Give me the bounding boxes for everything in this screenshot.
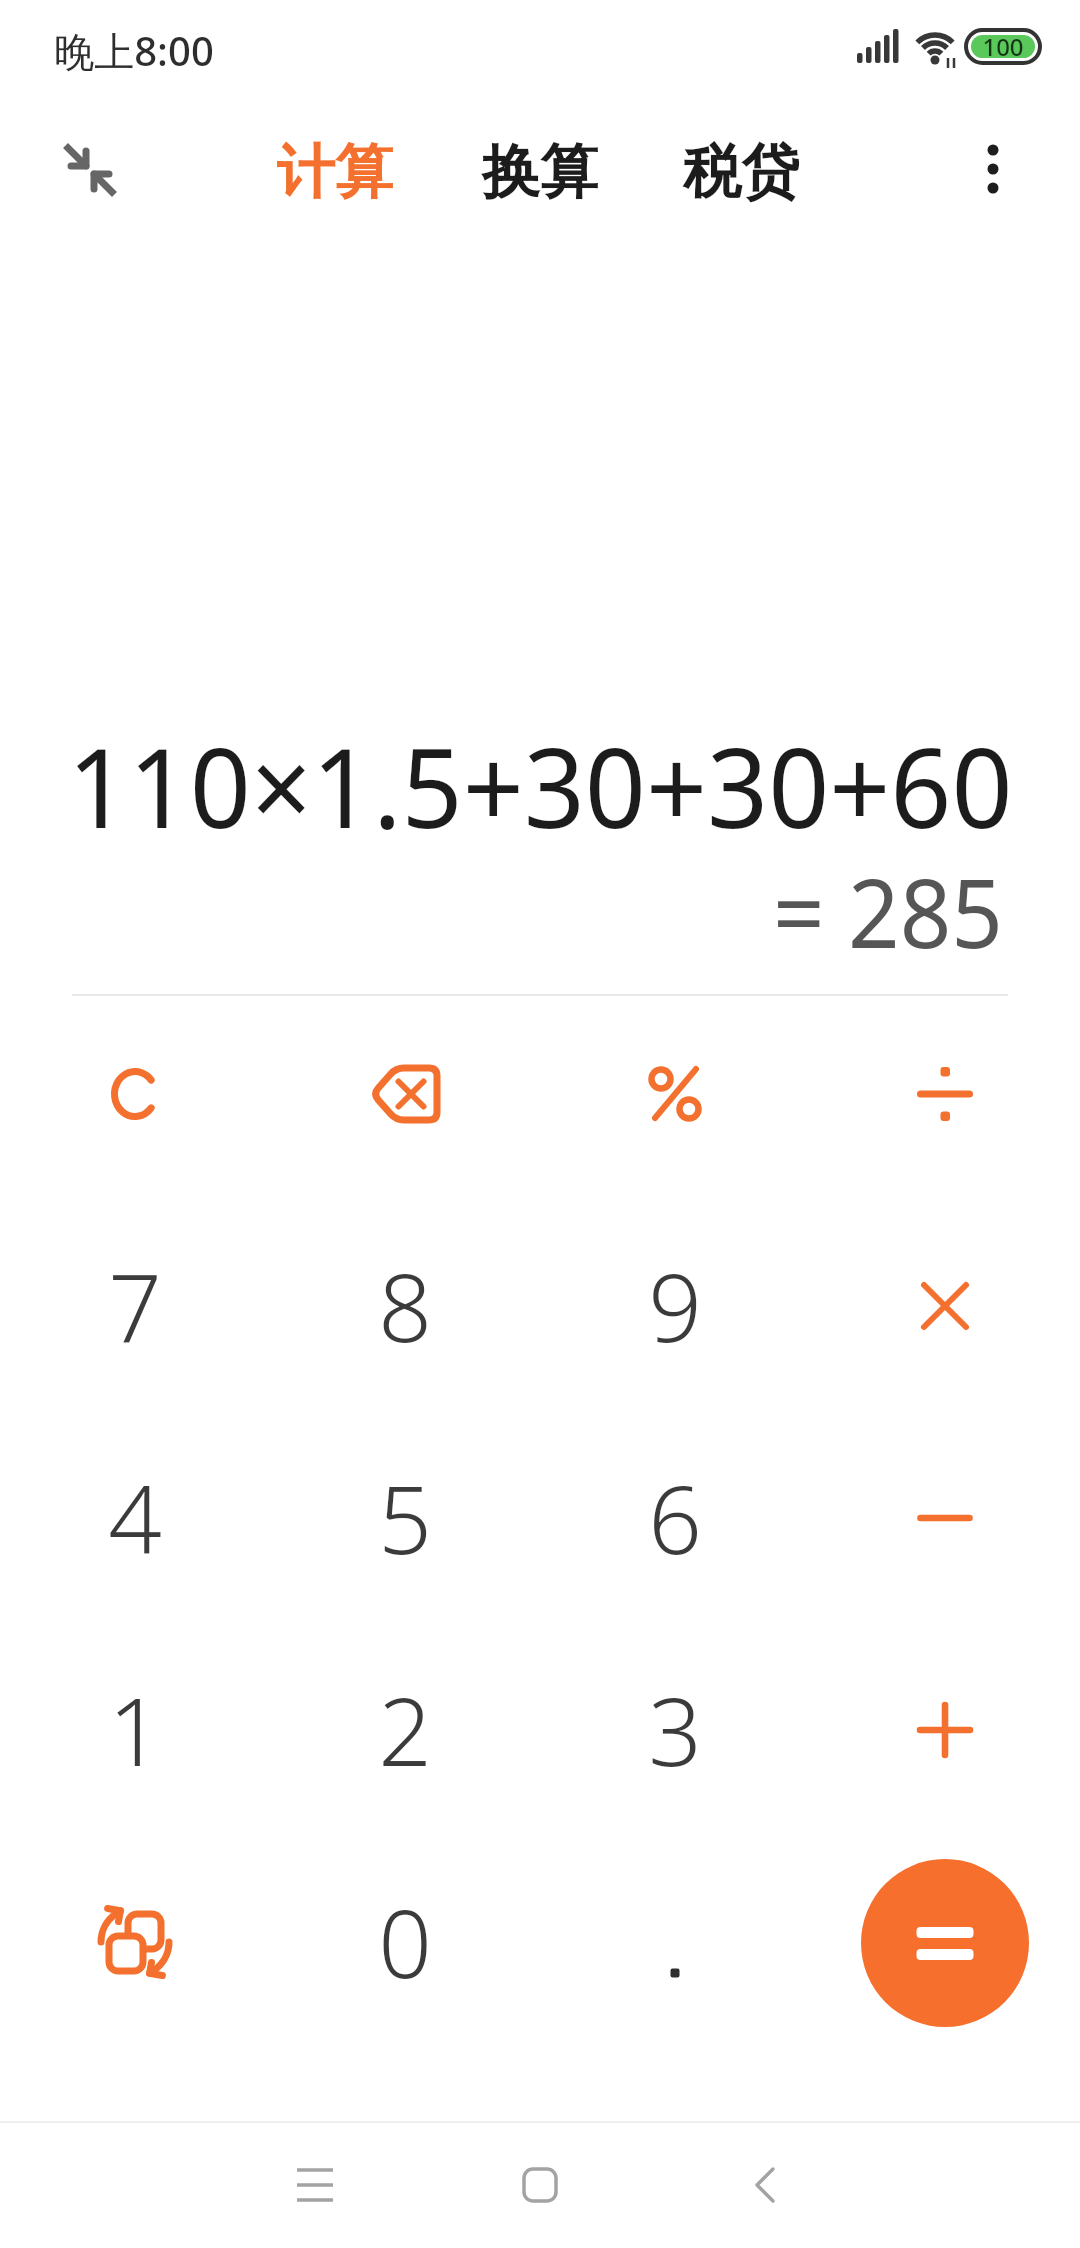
button[interactable] [290,999,520,1189]
button[interactable]: 0 [290,1847,520,2037]
button[interactable]: 4 [20,1423,250,1613]
button[interactable]: 9 [560,1211,790,1401]
button[interactable]: 2 [290,1635,520,1825]
staticText: 换算 [482,136,598,209]
staticText: 5 [378,1454,432,1582]
button[interactable] [20,1847,250,2037]
button[interactable] [560,999,790,1189]
button[interactable]: 5 [290,1423,520,1613]
button[interactable] [950,130,1036,214]
staticText: 7 [108,1242,162,1370]
staticText: 计算 [277,136,393,209]
button[interactable] [830,999,1060,1189]
button[interactable]: 6 [560,1423,790,1613]
staticText: 4 [108,1454,162,1582]
staticText: 晚上8:00 [54,23,214,75]
staticText: = 285 [603,846,1080,975]
button[interactable] [490,2135,590,2235]
button[interactable] [50,130,130,214]
button[interactable] [20,999,250,1189]
button[interactable]: 8 [290,1211,520,1401]
staticText: 0 [378,1878,432,2006]
staticText: 110×1.5+30+30+60 [0,711,1080,859]
staticText: 9 [648,1242,702,1370]
button[interactable] [861,1859,1029,2027]
button[interactable]: 换算 [440,130,640,214]
button[interactable] [560,1847,790,2037]
button[interactable] [830,1423,1060,1613]
button[interactable] [830,1211,1060,1401]
button[interactable] [715,2135,815,2235]
staticText: 6 [648,1454,702,1582]
button[interactable]: 计算 [235,130,435,214]
staticText: 8 [378,1242,432,1370]
button[interactable]: 7 [20,1211,250,1401]
staticText: 2 [378,1666,432,1794]
button[interactable]: 3 [560,1635,790,1825]
staticText: 100 [982,30,1024,63]
button[interactable] [265,2135,365,2235]
button[interactable] [830,1635,1060,1825]
staticText: 税贷 [683,136,799,209]
staticText: 3 [648,1666,702,1794]
staticText: 1 [108,1666,162,1794]
button[interactable]: 1 [20,1635,250,1825]
button[interactable]: 税贷 [641,130,841,214]
